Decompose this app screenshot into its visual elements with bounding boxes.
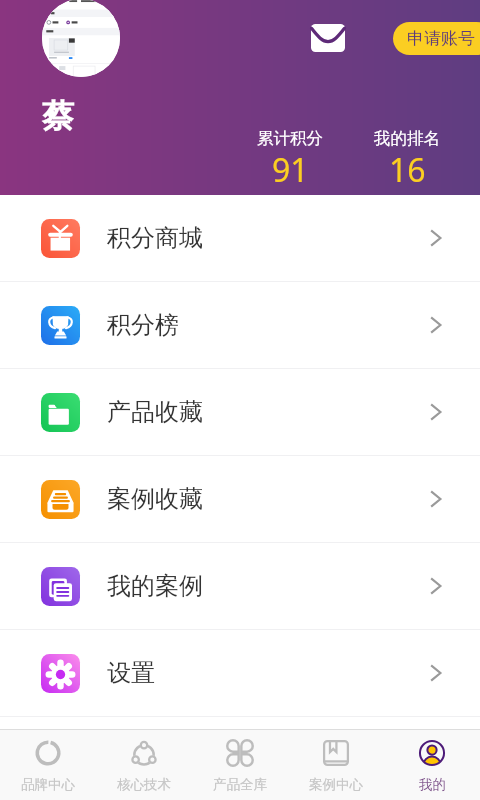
button[interactable]: 我的	[384, 730, 480, 800]
staticText: 品牌中心	[21, 776, 75, 793]
button[interactable]: 申请账号	[393, 22, 480, 55]
staticText: 申请账号	[407, 28, 475, 49]
button[interactable]: Messages	[311, 24, 345, 52]
staticText: 设置	[107, 658, 155, 688]
staticText: 91	[272, 148, 309, 192]
button[interactable]: 品牌中心	[0, 730, 96, 800]
staticText: 我的案例	[107, 571, 203, 601]
staticText: 我的排名	[374, 128, 440, 149]
button[interactable]	[42, 0, 120, 77]
staticText: 累计积分	[257, 128, 323, 149]
button[interactable]: 我的案例	[0, 543, 480, 629]
staticText: 蔡	[42, 96, 74, 136]
staticText: 积分商城	[107, 223, 203, 253]
staticText: 案例收藏	[107, 484, 203, 514]
staticText: 积分榜	[107, 310, 179, 340]
button[interactable]: 核心技术	[96, 730, 192, 800]
button[interactable]: 设置	[0, 630, 480, 716]
button[interactable]: 我的排名	[357, 128, 457, 193]
button[interactable]: 案例中心	[288, 730, 384, 800]
staticText: 16	[389, 148, 426, 192]
staticText: 案例中心	[309, 776, 363, 793]
button[interactable]: 案例收藏	[0, 456, 480, 542]
staticText: 产品收藏	[107, 397, 203, 427]
button[interactable]: 累计积分	[240, 128, 340, 193]
button[interactable]: 产品全库	[192, 730, 288, 800]
staticText: 核心技术	[117, 776, 171, 793]
button[interactable]: 积分榜	[0, 282, 480, 368]
staticText: 产品全库	[213, 776, 267, 793]
button[interactable]: 产品收藏	[0, 369, 480, 455]
staticText: 我的	[419, 776, 446, 793]
button[interactable]: 积分商城	[0, 195, 480, 281]
